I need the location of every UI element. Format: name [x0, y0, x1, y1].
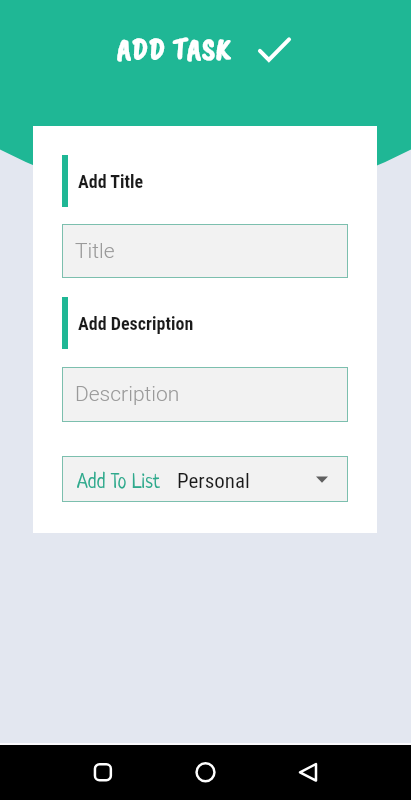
button[interactable]: Save task [254, 29, 294, 69]
button[interactable]: Home [180, 745, 230, 800]
button[interactable]: Description [62, 367, 348, 422]
button[interactable]: Title [62, 224, 348, 278]
staticText: Add To List [77, 473, 160, 494]
staticText: Add Title [78, 171, 144, 192]
staticText: Description [75, 382, 180, 407]
button[interactable]: Back [283, 745, 333, 800]
button[interactable]: Recent apps [78, 745, 128, 800]
staticText: Personal [177, 469, 250, 494]
staticText: Title [75, 239, 115, 264]
button[interactable]: Add To List [62, 456, 348, 502]
staticText: ADD TASK [117, 30, 232, 68]
staticText: Add Description [78, 313, 194, 334]
